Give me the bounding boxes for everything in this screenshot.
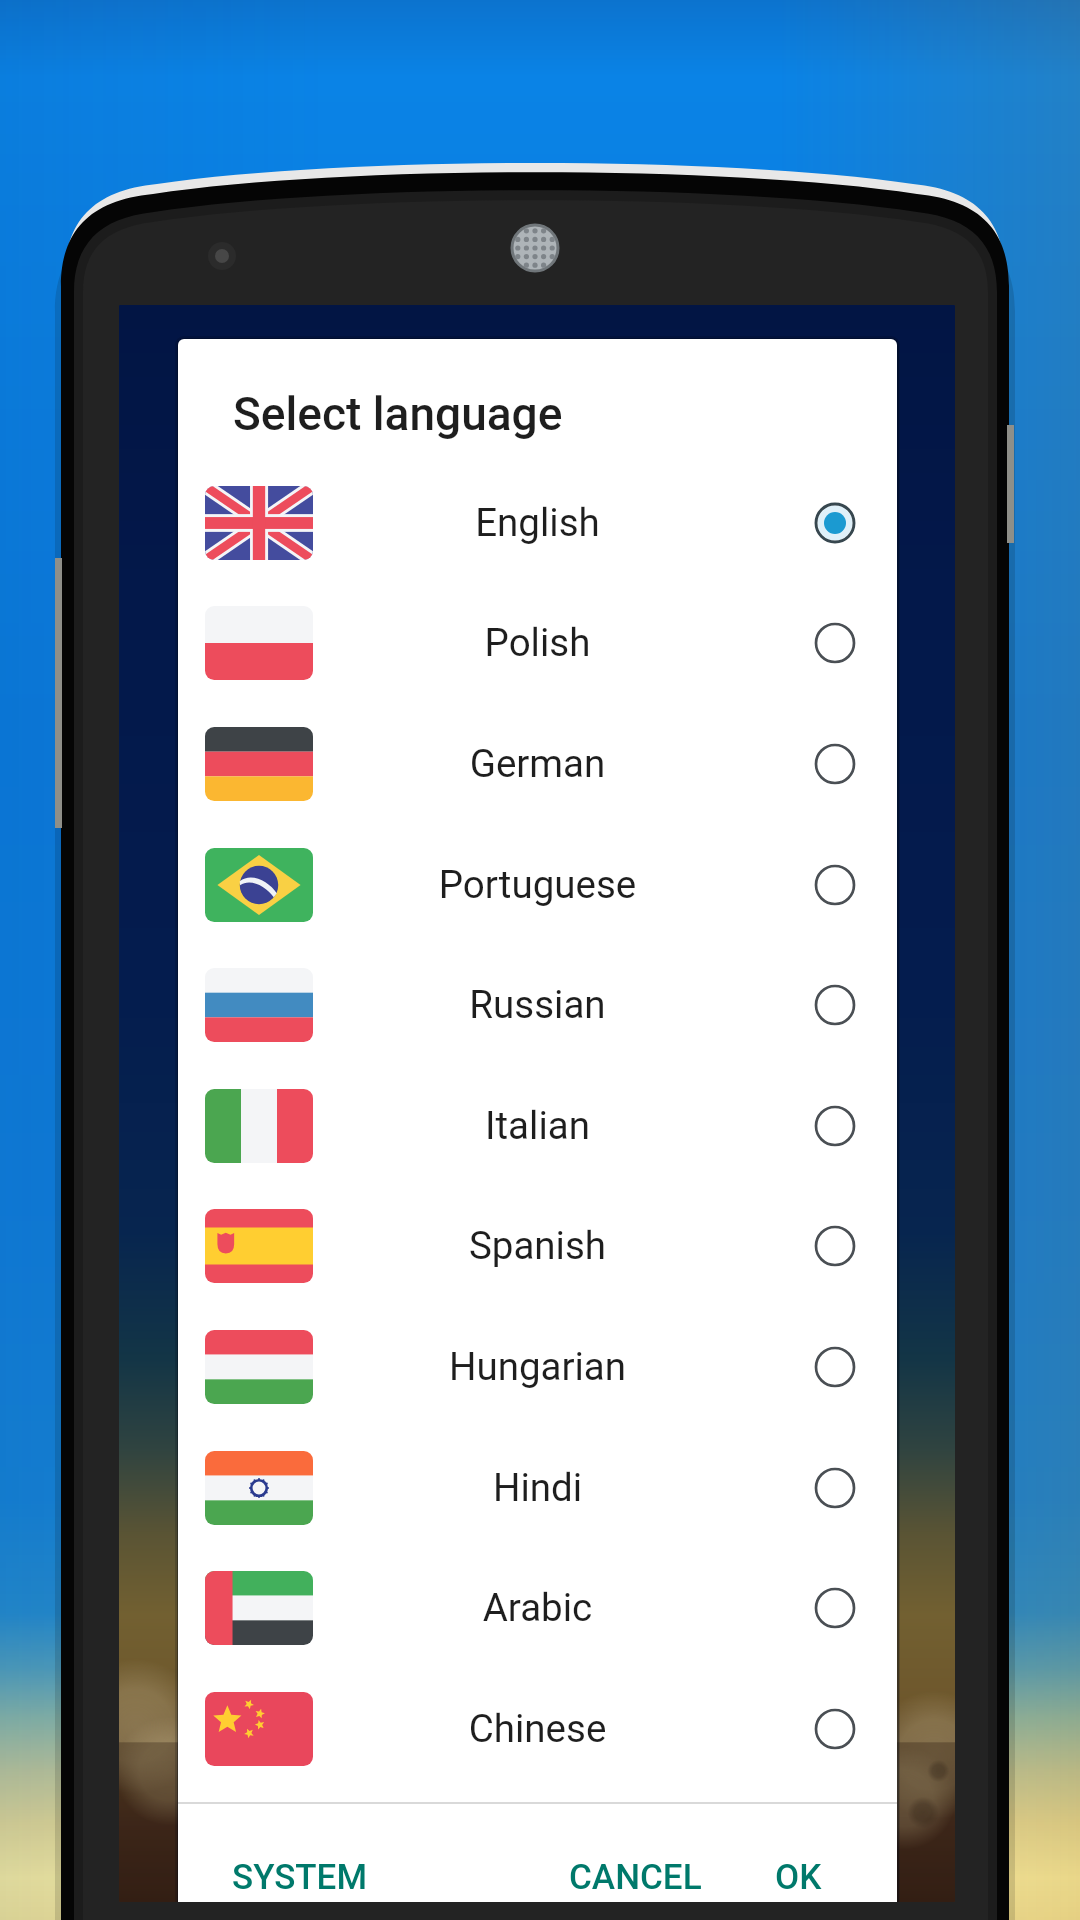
button[interactable]: Chinese	[178, 1668, 897, 1789]
staticText: Portuguese	[178, 862, 897, 907]
staticText: CANCEL	[569, 1857, 702, 1898]
button[interactable]: Portuguese	[178, 824, 897, 945]
button[interactable]: Russian	[178, 944, 897, 1065]
staticText: English	[178, 500, 897, 545]
staticText: Hindi	[178, 1465, 897, 1510]
staticText: Spanish	[178, 1223, 897, 1268]
button[interactable]: Hindi	[178, 1427, 897, 1548]
button[interactable]: Italian	[178, 1065, 897, 1186]
staticText: Chinese	[178, 1706, 897, 1751]
staticText: Arabic	[178, 1585, 897, 1630]
button[interactable]: German	[178, 703, 897, 824]
button[interactable]: Polish	[178, 582, 897, 703]
staticText: Select language	[233, 387, 563, 441]
button[interactable]: English	[178, 462, 897, 583]
button[interactable]: CANCEL	[555, 1847, 716, 1902]
button[interactable]: Hungarian	[178, 1306, 897, 1427]
staticText: OK	[775, 1857, 822, 1898]
button[interactable]: OK	[761, 1847, 836, 1902]
button[interactable]: SYSTEM	[218, 1847, 382, 1902]
staticText: Russian	[178, 982, 897, 1027]
button[interactable]: Arabic	[178, 1547, 897, 1668]
staticText: SYSTEM	[232, 1857, 368, 1898]
staticText: Italian	[178, 1103, 897, 1148]
staticText: German	[178, 741, 897, 786]
staticText: Hungarian	[178, 1344, 897, 1389]
button[interactable]: Spanish	[178, 1185, 897, 1306]
staticText: Polish	[178, 620, 897, 665]
